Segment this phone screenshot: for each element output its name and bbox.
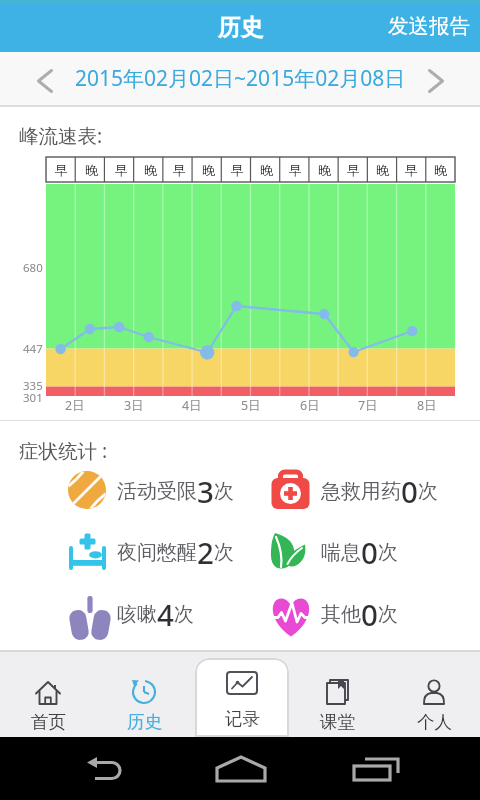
staticText: 晚 [202, 162, 215, 178]
staticText: 2日 [65, 397, 85, 412]
staticText: 8日 [417, 397, 437, 412]
staticText: 咳嗽 [117, 602, 157, 627]
staticText: 晚 [376, 162, 389, 178]
staticText: 2015年02月02日~2015年02月08日 [75, 64, 406, 93]
staticText: 0 [361, 532, 378, 572]
staticText: 次 [378, 602, 398, 627]
staticText: 晚 [144, 162, 157, 178]
staticText: 7日 [358, 397, 378, 412]
staticText: 个人 [417, 711, 452, 733]
button[interactable] [386, 651, 480, 737]
button[interactable] [195, 658, 289, 737]
staticText: 课堂 [320, 711, 355, 733]
staticText: 次 [174, 602, 194, 627]
button[interactable] [289, 651, 385, 737]
staticText: 急救用药 [321, 479, 401, 504]
button[interactable] [325, 737, 425, 800]
staticText: 晚 [318, 162, 331, 178]
staticText: 早 [173, 162, 186, 178]
staticText: 6日 [300, 397, 320, 412]
staticText: 次 [214, 479, 234, 504]
button[interactable]: 喘息 [321, 532, 398, 572]
staticText: 次 [214, 540, 234, 565]
staticText: 次 [418, 479, 438, 504]
button[interactable]: 发送报告 [378, 1, 480, 51]
button[interactable]: 急救用药 [321, 471, 438, 511]
staticText: 次 [378, 540, 398, 565]
staticText: 5日 [241, 397, 261, 412]
staticText: 症状统计 : [19, 437, 108, 464]
staticText: 活动受限 [117, 479, 197, 504]
staticText: 其他 [321, 602, 361, 627]
button[interactable] [410, 52, 480, 105]
staticText: 夜间憋醒 [117, 540, 197, 565]
staticText: 早 [347, 162, 360, 178]
staticText: 早 [115, 162, 128, 178]
staticText: 4日 [182, 397, 202, 412]
staticText: 历史 [127, 711, 162, 733]
button[interactable] [190, 737, 290, 800]
staticText: 首页 [31, 711, 66, 733]
staticText: 447 [23, 341, 43, 357]
button[interactable] [0, 52, 70, 105]
staticText: 喘息 [321, 540, 361, 565]
staticText: 记录 [225, 708, 260, 730]
button[interactable] [0, 651, 96, 737]
button[interactable]: 其他 [321, 594, 398, 634]
staticText: 3日 [124, 397, 144, 412]
staticText: 晚 [85, 162, 98, 178]
staticText: 301 [23, 390, 43, 406]
button[interactable]: 咳嗽 [117, 594, 194, 634]
staticText: 晚 [434, 162, 447, 178]
staticText: 2 [197, 532, 214, 572]
button[interactable]: 夜间憋醒 [117, 532, 234, 572]
staticText: 680 [23, 260, 43, 276]
staticText: 发送报告 [388, 13, 470, 39]
staticText: 早 [231, 162, 244, 178]
staticText: 早 [289, 162, 302, 178]
button[interactable]: 活动受限 [117, 471, 234, 511]
staticText: 历史 [218, 13, 263, 41]
staticText: 0 [401, 471, 418, 511]
staticText: 4 [157, 594, 174, 634]
staticText: 3 [197, 471, 214, 511]
staticText: 晚 [260, 162, 273, 178]
staticText: 早 [405, 162, 418, 178]
button[interactable] [96, 651, 192, 737]
staticText: 峰流速表: [19, 122, 103, 149]
button[interactable] [56, 737, 156, 800]
staticText: 早 [55, 162, 68, 178]
staticText: 335 [23, 378, 43, 394]
staticText: 0 [361, 594, 378, 634]
